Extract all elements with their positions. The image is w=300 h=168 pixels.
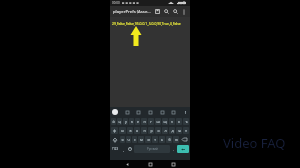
button[interactable]: Toolbar item 1 <box>135 109 141 115</box>
staticText: Русский <box>147 147 158 151</box>
button[interactable]: й <box>111 118 116 125</box>
button[interactable]: л <box>162 127 168 134</box>
staticText: в <box>129 128 132 133</box>
button[interactable]: щ <box>162 118 168 125</box>
staticText: м <box>140 137 143 142</box>
staticText: к <box>131 119 133 124</box>
button[interactable]: п <box>141 127 147 134</box>
button[interactable]: ф <box>111 127 118 134</box>
button[interactable]: Recent apps <box>167 160 179 168</box>
button[interactable]: Enter <box>177 145 189 153</box>
staticText: о <box>157 128 160 133</box>
staticText: й <box>112 119 115 124</box>
staticText: 00:00 <box>112 1 120 5</box>
button[interactable]: а <box>134 127 140 134</box>
button[interactable]: Voice input <box>182 109 188 115</box>
button[interactable]: т <box>152 136 158 143</box>
button[interactable]: х <box>176 118 182 125</box>
staticText: . <box>173 147 174 152</box>
staticText: х <box>178 119 180 124</box>
button[interactable]: Google <box>112 109 118 115</box>
button[interactable]: Toolbar item 2 <box>147 109 153 115</box>
staticText: н <box>143 119 146 124</box>
staticText: Video FAQ <box>223 134 286 152</box>
button[interactable]: я <box>120 136 125 143</box>
button[interactable]: ж <box>176 127 182 134</box>
button[interactable]: Shift <box>111 136 119 143</box>
staticText: д <box>171 128 174 133</box>
staticText: с <box>134 137 136 142</box>
button[interactable]: э <box>183 127 189 134</box>
staticText: г <box>150 119 152 124</box>
button[interactable]: з <box>169 118 175 125</box>
staticText: р <box>150 128 153 133</box>
button[interactable]: Search next <box>171 7 180 16</box>
button[interactable]: ы <box>119 127 126 134</box>
button[interactable]: More options <box>180 8 187 15</box>
button[interactable]: Toolbar item 0 <box>124 109 130 115</box>
button[interactable]: Backspace <box>180 136 189 143</box>
staticText: б <box>168 137 171 142</box>
staticText: ж <box>178 128 181 133</box>
button[interactable]: Space <box>134 145 170 153</box>
staticText: ф <box>113 128 116 133</box>
button[interactable]: в <box>127 127 133 134</box>
button[interactable]: Toolbar item 3 <box>159 109 165 115</box>
staticText: е <box>137 119 139 124</box>
staticText: я <box>121 137 124 142</box>
button[interactable]: 29,False,False,95.0.0.1_5.0.0,90,True,4,… <box>112 21 190 26</box>
staticText: ц <box>118 119 121 124</box>
button[interactable]: р <box>148 127 154 134</box>
button[interactable]: ъ <box>183 118 189 125</box>
staticText: playerPrefs (Asse… <box>113 9 153 15</box>
button[interactable]: ю <box>173 136 179 143</box>
staticText: ь <box>161 137 163 142</box>
button[interactable]: ц <box>117 118 122 125</box>
staticText: т <box>154 137 156 142</box>
button[interactable]: и <box>145 136 151 143</box>
staticText: ш <box>156 119 160 124</box>
button[interactable]: ш <box>155 118 161 125</box>
staticText: щ <box>163 119 167 124</box>
button[interactable]: Save <box>153 7 162 16</box>
button[interactable]: Emoji <box>127 145 133 153</box>
button[interactable]: е <box>135 118 140 125</box>
button[interactable]: Home <box>144 160 156 168</box>
staticText: ?123 <box>112 147 119 151</box>
button[interactable]: у <box>123 118 128 125</box>
button[interactable]: с <box>132 136 137 143</box>
staticText: у <box>125 119 127 124</box>
button[interactable]: г <box>148 118 154 125</box>
button[interactable]: ь <box>159 136 165 143</box>
staticText: 29,False,False,95.0.0.1_5.0.0,90,True,4,… <box>112 21 181 26</box>
staticText: а <box>136 128 138 133</box>
staticText: ч <box>127 137 130 142</box>
staticText: з <box>171 119 173 124</box>
staticText: л <box>164 128 167 133</box>
staticText: ъ <box>185 119 188 124</box>
staticText: э <box>185 128 187 133</box>
staticText: ю <box>175 137 178 142</box>
button[interactable]: Period <box>171 145 176 153</box>
button[interactable]: Comma <box>121 145 126 153</box>
staticText: , <box>123 147 124 152</box>
button[interactable]: н <box>141 118 147 125</box>
button[interactable]: Back <box>121 160 133 168</box>
staticText: ы <box>121 128 124 133</box>
button[interactable]: о <box>155 127 161 134</box>
button[interactable]: ?123 <box>111 145 120 153</box>
button[interactable]: Search <box>162 7 171 16</box>
button[interactable]: к <box>129 118 134 125</box>
button[interactable]: б <box>166 136 172 143</box>
button[interactable]: д <box>169 127 175 134</box>
staticText: п <box>143 128 146 133</box>
staticText: и <box>147 137 150 142</box>
button[interactable]: Toolbar item 4 <box>170 109 176 115</box>
button[interactable]: м <box>138 136 144 143</box>
button[interactable]: ч <box>126 136 131 143</box>
